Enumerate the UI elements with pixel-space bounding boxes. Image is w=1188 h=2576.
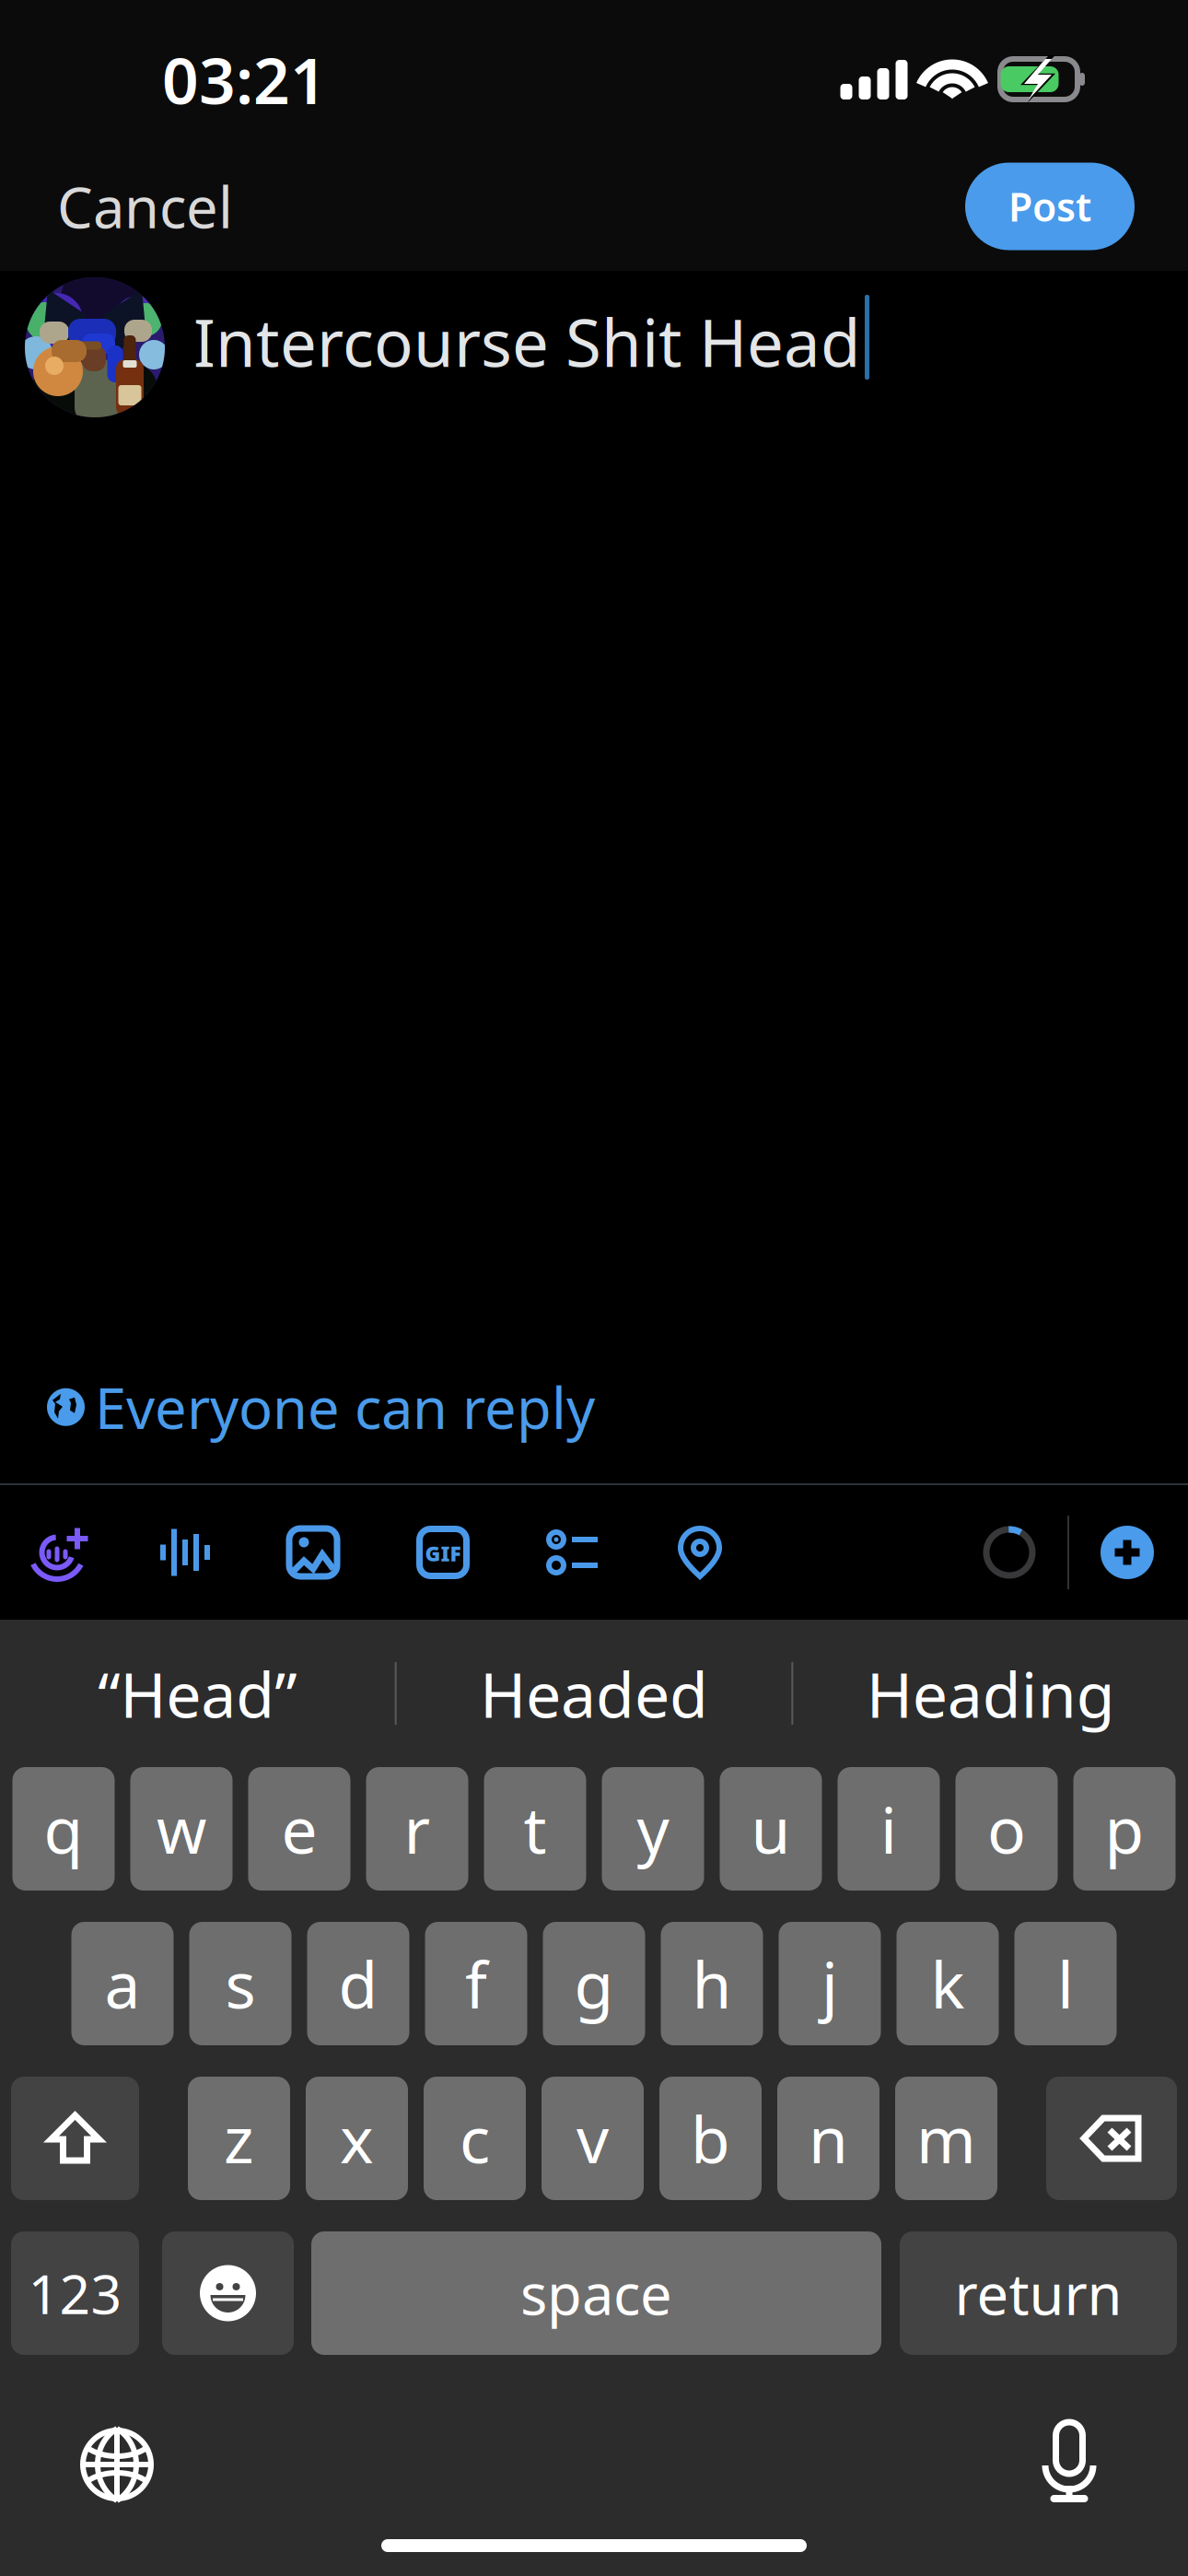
staticText: d <box>338 1941 378 2026</box>
button[interactable]: x <box>306 2077 408 2200</box>
button[interactable]: u <box>720 1767 822 1891</box>
button[interactable]: w <box>130 1767 233 1891</box>
staticText: 03:21 <box>162 37 327 122</box>
button[interactable]: y <box>602 1767 704 1891</box>
button[interactable]: 123 <box>11 2231 139 2355</box>
button[interactable]: v <box>542 2077 644 2200</box>
staticText: “Head” <box>98 1652 297 1735</box>
button[interactable]: f <box>425 1922 527 2045</box>
staticText: l <box>1057 1941 1074 2026</box>
button[interactable]: a <box>71 1922 174 2045</box>
button[interactable]: space <box>311 2231 881 2355</box>
staticText: Intercourse Shit Head <box>193 299 860 385</box>
staticText: Heading <box>866 1652 1115 1735</box>
button[interactable]: i <box>838 1767 940 1891</box>
staticText: e <box>281 1786 317 1871</box>
button[interactable]: Add another post <box>1090 1516 1164 1589</box>
staticText: m <box>916 2096 976 2181</box>
button[interactable]: p <box>1073 1767 1176 1891</box>
button[interactable]: b <box>659 2077 762 2200</box>
staticText: Post <box>1008 180 1091 233</box>
button[interactable]: Photos <box>276 1516 350 1589</box>
button[interactable]: Voice <box>148 1516 222 1589</box>
button[interactable]: Heading <box>793 1629 1188 1758</box>
button[interactable]: z <box>188 2077 290 2200</box>
staticText: space <box>520 2256 672 2331</box>
staticText: k <box>931 1941 965 2026</box>
button[interactable]: Poll <box>535 1516 609 1589</box>
button[interactable]: Grok <box>20 1516 94 1589</box>
staticText: s <box>225 1941 256 2026</box>
button[interactable]: “Head” <box>0 1629 395 1758</box>
staticText: q <box>44 1786 83 1871</box>
staticText: 123 <box>28 2257 122 2329</box>
staticText: a <box>105 1941 140 2026</box>
button[interactable]: l <box>1014 1922 1117 2045</box>
staticText: h <box>692 1941 732 2026</box>
staticText: j <box>821 1941 838 2026</box>
button[interactable]: Next keyboard <box>80 2428 154 2501</box>
button[interactable]: h <box>661 1922 763 2045</box>
staticText: Headed <box>480 1652 708 1735</box>
button[interactable]: return <box>900 2231 1177 2355</box>
staticText: GIF <box>425 1539 461 1567</box>
staticText: p <box>1105 1786 1144 1871</box>
staticText: w <box>157 1786 206 1871</box>
staticText: b <box>691 2096 730 2181</box>
button[interactable]: n <box>777 2077 879 2200</box>
button[interactable]: Location <box>663 1516 737 1589</box>
button[interactable]: o <box>955 1767 1058 1891</box>
button[interactable]: GIF <box>406 1516 480 1589</box>
button[interactable]: Headed <box>397 1629 791 1758</box>
staticText: Everyone can reply <box>95 1370 595 1445</box>
staticText: r <box>404 1786 431 1871</box>
button[interactable]: r <box>366 1767 468 1891</box>
staticText: z <box>224 2096 254 2181</box>
button[interactable]: Delete <box>1046 2077 1177 2200</box>
button[interactable]: t <box>484 1767 586 1891</box>
staticText: f <box>465 1941 487 2026</box>
staticText: n <box>809 2096 848 2181</box>
button[interactable]: k <box>897 1922 999 2045</box>
button[interactable]: s <box>189 1922 291 2045</box>
staticText: g <box>574 1941 614 2026</box>
button[interactable]: Shift <box>11 2077 139 2200</box>
button[interactable]: e <box>248 1767 350 1891</box>
staticText: c <box>460 2096 490 2181</box>
button[interactable]: Cancel <box>0 147 261 266</box>
button[interactable]: Character count <box>973 1516 1046 1589</box>
button[interactable]: m <box>895 2077 997 2200</box>
staticText: t <box>524 1786 547 1871</box>
staticText: return <box>955 2256 1122 2331</box>
button[interactable]: q <box>12 1767 115 1891</box>
staticText: u <box>751 1786 791 1871</box>
staticText: x <box>340 2096 374 2181</box>
staticText: v <box>577 2096 609 2181</box>
staticText: y <box>637 1786 669 1871</box>
button[interactable]: g <box>543 1922 645 2045</box>
staticText: Cancel <box>57 169 233 244</box>
button[interactable]: d <box>307 1922 409 2045</box>
staticText: i <box>880 1786 897 1871</box>
button[interactable]: j <box>779 1922 881 2045</box>
button[interactable]: Everyone can reply <box>47 1360 595 1454</box>
button[interactable]: Post <box>965 163 1135 250</box>
button[interactable]: c <box>424 2077 526 2200</box>
button[interactable]: Dictate <box>1042 2422 1096 2507</box>
staticText: o <box>987 1786 1026 1871</box>
button[interactable]: Emoji <box>162 2231 294 2355</box>
